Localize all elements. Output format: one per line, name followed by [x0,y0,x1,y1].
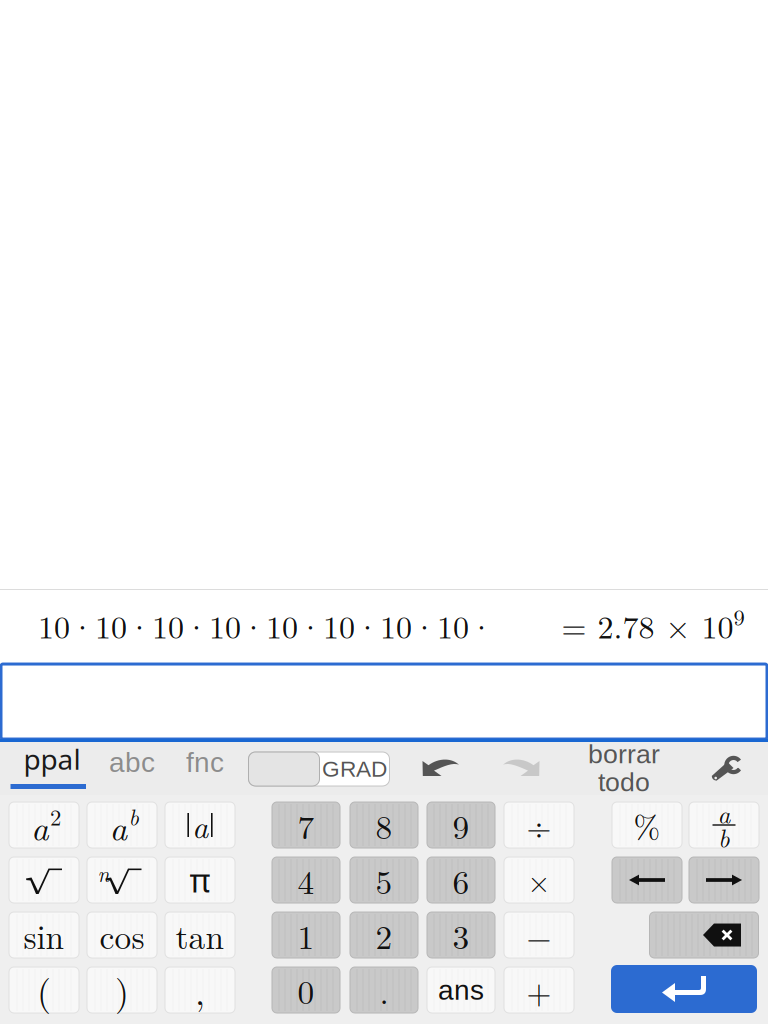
staticText: 10 [38,602,70,648]
button[interactable]: 4 [272,857,340,903]
staticText: 2 [375,911,392,959]
staticText: 8 [375,801,392,849]
staticText: a [109,801,127,851]
staticText: 5 [375,856,392,904]
button[interactable]: cos [87,912,157,958]
staticText: · [469,602,494,648]
staticText: ) [115,964,129,1015]
staticText: tan [175,911,224,959]
staticText: 4 [297,856,314,904]
staticText: 10 [209,602,241,648]
staticText: 10 [323,602,355,648]
staticText: 10 [152,602,184,648]
button[interactable]: fnc [159,742,251,794]
staticText: GRAD [322,756,387,782]
button[interactable]: ppal [6,742,98,794]
button[interactable]: Undo [412,742,470,794]
button[interactable]: abc [86,742,178,794]
staticText: 1 [297,911,314,959]
staticText: 10 [266,602,298,648]
button[interactable]: a [9,802,79,848]
staticText: n [97,858,109,888]
button[interactable] [9,857,79,903]
button[interactable]: π [165,857,235,903]
button[interactable]: a [87,802,157,848]
button[interactable]: a [689,802,759,848]
button[interactable]: 0 [272,967,340,1013]
staticText: 6 [452,856,469,904]
staticText: 9 [733,600,744,632]
button[interactable] [649,912,758,958]
staticText: cos [99,911,144,959]
staticText: π [189,858,210,902]
button[interactable]: % [612,802,682,848]
button[interactable] [689,857,759,903]
staticText: b [128,800,138,832]
staticText: + [526,967,551,1013]
button[interactable]: ( [9,967,79,1013]
staticText: % [633,802,660,848]
staticText: 10 [437,602,469,648]
staticText: ppal [23,740,80,778]
button[interactable]: Enter [611,965,757,1013]
staticText: · [412,602,437,648]
button[interactable]: , [165,967,235,1013]
staticText: 2 [50,800,61,832]
staticText: fnc [186,747,224,778]
button[interactable]: GRAD [248,752,389,786]
button[interactable]: 2 [350,912,418,958]
staticText: . [379,966,388,1014]
staticText: a [192,802,208,848]
staticText: abc [109,747,155,778]
button[interactable]: − [504,912,574,958]
button[interactable]: 5 [350,857,418,903]
button[interactable]: + [504,967,574,1013]
button[interactable]: sin [9,912,79,958]
staticText: 7 [297,801,314,849]
button[interactable]: Redo [492,742,550,794]
button[interactable]: Settings [705,743,751,795]
staticText: 10 [95,602,127,648]
staticText: 3 [452,911,469,959]
button[interactable]: ans [427,967,495,1013]
staticText: = 2.78 × 10 [561,602,733,648]
button[interactable]: tan [165,912,235,958]
staticText: a [31,801,49,851]
staticText: 0 [297,966,314,1014]
button[interactable]: 7 [272,802,340,848]
button[interactable]: 8 [350,802,418,848]
button[interactable]: 9 [427,802,495,848]
button[interactable]: a [165,802,235,848]
staticText: , [195,964,205,1015]
staticText: ans [438,974,484,1006]
button[interactable]: . [350,967,418,1013]
button[interactable] [0,664,768,739]
staticText: · [184,602,209,648]
staticText: · [127,602,152,648]
button[interactable]: × [504,857,574,903]
staticText: − [526,912,551,958]
button[interactable] [612,857,682,903]
staticText: 10 [380,602,412,648]
staticText: · [355,602,380,648]
staticText: b [718,819,730,855]
button[interactable]: 6 [427,857,495,903]
button[interactable]: 1 [272,912,340,958]
staticText: ( [37,964,51,1015]
staticText: ÷ [526,802,551,848]
button[interactable]: ) [87,967,157,1013]
staticText: 9 [452,801,469,849]
staticText: borrar [588,739,660,769]
staticText: sin [23,911,64,959]
button[interactable]: ÷ [504,802,574,848]
staticText: × [527,859,550,901]
button[interactable]: n [87,857,157,903]
button[interactable]: borrar [569,742,679,794]
button[interactable]: 3 [427,912,495,958]
staticText: · [70,602,95,648]
staticText: todo [598,767,650,797]
staticText: a [717,795,730,831]
staticText: · [241,602,266,648]
staticText: · [298,602,323,648]
